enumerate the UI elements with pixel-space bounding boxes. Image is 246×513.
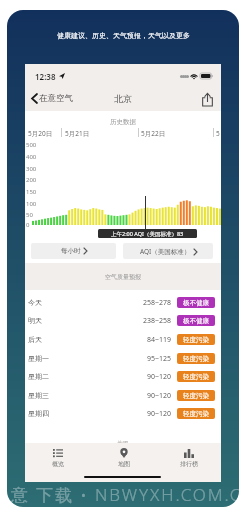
staticText: 5 [216, 129, 220, 138]
staticText: 星期一 [28, 354, 49, 363]
button[interactable]: 在意空气 [30, 86, 75, 111]
staticText: 明天 [28, 316, 42, 325]
staticText: 95~125 [147, 354, 172, 364]
staticText: 星期三 [28, 391, 49, 400]
staticText: 空气质量预报 [25, 273, 221, 281]
staticText: 258~278 [143, 298, 172, 308]
staticText: 地图 [118, 460, 130, 468]
button[interactable]: Share [197, 89, 217, 109]
button[interactable]: 每小时 [31, 243, 116, 259]
staticText: 意 下载 • NBWYXH.COM.C [11, 483, 243, 506]
button[interactable]: 明天 [25, 311, 221, 330]
staticText: 84~119 [147, 335, 172, 345]
staticText: 历史数据 [25, 118, 221, 126]
staticText: 今天 [28, 298, 42, 307]
staticText: 12:38 [35, 71, 56, 82]
staticText: 50 [26, 211, 33, 219]
staticText: 100 [26, 200, 37, 208]
staticText: 健康建议、历史、天气预报，天气以及更多 [57, 31, 190, 40]
staticText: 轻度污染 [183, 336, 209, 344]
button[interactable]: 今天 [25, 293, 221, 312]
staticText: 5月20日 [28, 129, 53, 138]
button[interactable]: 排行榜 [156, 443, 221, 468]
button[interactable]: 星期三 [25, 386, 221, 405]
button[interactable]: 星期一 [25, 349, 221, 368]
staticText: 轻度污染 [183, 373, 209, 381]
staticText: 5月22日 [141, 129, 166, 138]
staticText: 轻度污染 [183, 355, 209, 363]
staticText: 90~120 [147, 372, 172, 382]
button[interactable]: AQI（美国标准） [123, 243, 213, 259]
staticText: 238~258 [143, 316, 172, 326]
staticText: 地图 [25, 440, 221, 447]
staticText: 轻度污染 [183, 392, 209, 400]
staticText: AQI（美国标准） [140, 247, 191, 256]
staticText: 极不健康 [183, 317, 209, 325]
staticText: 极不健康 [183, 299, 209, 307]
staticText: 90~120 [147, 391, 172, 401]
staticText: 概览 [52, 460, 64, 468]
button[interactable]: 星期二 [25, 367, 221, 386]
staticText: 300 [26, 165, 37, 173]
staticText: 0 [26, 221, 30, 229]
staticText: 排行榜 [180, 460, 198, 468]
staticText: 轻度污染 [183, 410, 209, 418]
staticText: 在意空气 [39, 93, 73, 104]
staticText: 500 [26, 141, 37, 149]
staticText: 150 [26, 188, 37, 196]
button[interactable]: 星期四 [25, 404, 221, 423]
staticText: 200 [26, 176, 37, 184]
staticText: 5月21日 [65, 129, 90, 138]
staticText: 400 [26, 153, 37, 161]
staticText: 上午2:00 AQI（美国标准）83 [111, 230, 184, 238]
staticText: 北京 [114, 93, 132, 104]
staticText: 后天 [28, 335, 42, 344]
staticText: 90~120 [147, 409, 172, 419]
staticText: 每小时 [61, 247, 81, 255]
button[interactable]: 概览 [25, 443, 91, 468]
button[interactable]: 后天 [25, 330, 221, 349]
staticText: 星期四 [28, 409, 49, 418]
button[interactable]: 地图 [91, 443, 156, 468]
staticText: 星期二 [28, 372, 49, 381]
